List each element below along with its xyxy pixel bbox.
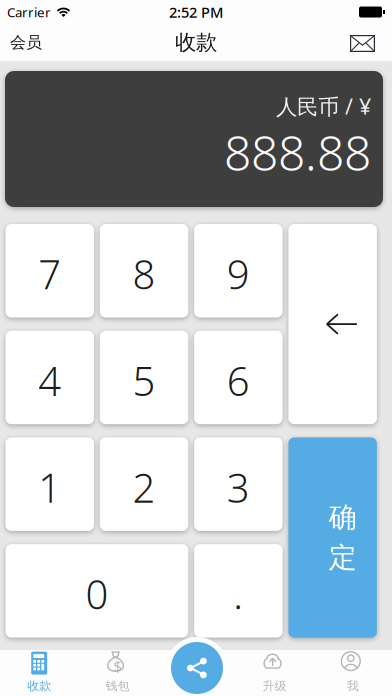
staticText: 0 xyxy=(85,567,108,620)
button[interactable]: 7 xyxy=(5,224,94,317)
button[interactable]: Backspace xyxy=(288,224,377,424)
staticText: 收款 xyxy=(175,29,217,56)
staticText: 会员 xyxy=(10,33,42,52)
staticText: 8 xyxy=(133,247,156,300)
button[interactable]: . xyxy=(194,544,283,638)
staticText: 7 xyxy=(38,247,61,300)
button[interactable]: 升级 xyxy=(235,650,314,696)
button[interactable]: 确 xyxy=(288,437,377,638)
button[interactable]: 收款 xyxy=(0,650,78,696)
button[interactable]: 4 xyxy=(5,331,94,424)
staticText: 定 xyxy=(329,540,357,575)
staticText: 2:52 PM xyxy=(169,2,223,22)
staticText: 2 xyxy=(133,461,156,514)
button[interactable]: 会员 xyxy=(4,21,48,63)
staticText: 收款 xyxy=(27,679,51,693)
button[interactable]: $ xyxy=(78,650,157,696)
button[interactable]: 9 xyxy=(194,224,283,317)
staticText: Carrier xyxy=(7,3,51,21)
staticText: 钱包 xyxy=(106,679,130,693)
staticText: 5 xyxy=(133,354,156,407)
staticText: 升级 xyxy=(262,679,286,693)
staticText: 我 xyxy=(347,679,359,693)
button[interactable]: 5 xyxy=(100,331,188,424)
staticText: 确 xyxy=(329,500,357,534)
button[interactable]: 6 xyxy=(194,331,283,424)
button[interactable]: 8 xyxy=(100,224,188,317)
staticText: 9 xyxy=(227,247,250,300)
button[interactable]: 0 xyxy=(5,544,188,638)
staticText: 888.88 xyxy=(224,120,371,184)
button[interactable]: 3 xyxy=(194,437,283,531)
staticText: 人民币 / ¥ xyxy=(276,92,371,120)
button[interactable]: 1 xyxy=(5,437,94,531)
button[interactable]: Share xyxy=(166,637,228,696)
button[interactable]: 我 xyxy=(314,650,392,696)
staticText: 3 xyxy=(227,461,250,514)
staticText: 6 xyxy=(227,354,250,407)
button[interactable]: 2 xyxy=(100,437,188,531)
staticText: 1 xyxy=(38,461,61,514)
staticText: 4 xyxy=(38,354,61,407)
staticText: . xyxy=(233,567,243,620)
button[interactable]: Messages xyxy=(337,21,388,63)
staticText: $ xyxy=(114,657,122,676)
